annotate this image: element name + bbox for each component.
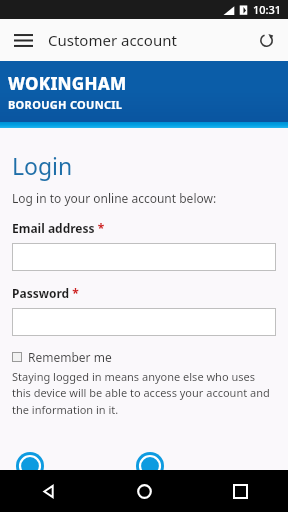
staticText: Login [12, 150, 73, 181]
staticText: Email address * [12, 220, 105, 236]
staticText: Remember me [28, 349, 112, 365]
button[interactable]: Home [96, 470, 192, 512]
staticText: 10:31 [253, 2, 282, 17]
staticText: BOROUGH COUNCIL [8, 97, 123, 112]
button[interactable] [12, 308, 276, 336]
staticText: Staying logged in means anyone else who … [12, 369, 276, 418]
button[interactable]: Refresh [251, 25, 281, 55]
button[interactable]: Remember me [12, 349, 112, 365]
staticText: WOKINGHAM [8, 72, 127, 95]
button[interactable] [12, 243, 276, 271]
staticText: Log in to your online account below: [12, 190, 217, 206]
button[interactable]: Menu [8, 25, 38, 55]
staticText: Customer account [48, 30, 177, 50]
button[interactable]: Next [136, 452, 164, 480]
button[interactable]: Back [0, 470, 96, 512]
staticText: Password * [12, 285, 79, 301]
button[interactable]: Previous [16, 452, 44, 480]
button[interactable]: Recents [192, 470, 288, 512]
